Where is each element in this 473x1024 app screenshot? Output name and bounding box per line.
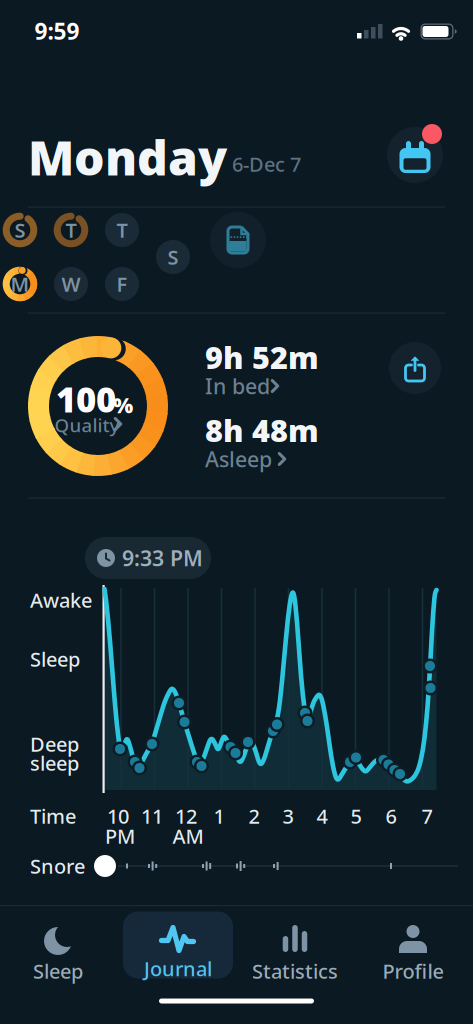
button[interactable]: Sleep notes xyxy=(210,212,266,268)
staticText: sleep xyxy=(30,750,79,776)
staticText: Statistics xyxy=(252,958,338,984)
button[interactable]: Sleep quality 100 percent xyxy=(26,334,170,478)
button[interactable]: Went to bed 9:33 PM xyxy=(85,537,211,579)
button[interactable]: W xyxy=(51,264,91,304)
button[interactable]: Play snore audio xyxy=(94,855,116,877)
staticText: 5 xyxy=(350,803,361,829)
staticText: PM xyxy=(105,823,135,849)
staticText: S xyxy=(167,244,178,270)
button[interactable]: Calendar xyxy=(383,121,447,189)
staticText: 9:59 xyxy=(34,16,79,46)
staticText: Profile xyxy=(382,958,443,984)
staticText: Monday xyxy=(28,125,227,189)
staticText: 1 xyxy=(213,803,224,829)
staticText: 12 xyxy=(175,803,197,829)
button[interactable]: F xyxy=(102,264,142,304)
staticText: Deep xyxy=(30,731,79,757)
button[interactable]: T xyxy=(102,210,142,250)
staticText: S xyxy=(14,217,25,243)
button[interactable]: Statistics xyxy=(240,911,350,981)
button[interactable]: Share xyxy=(389,342,441,394)
staticText: Sleep xyxy=(30,646,80,672)
button[interactable]: Profile xyxy=(358,911,468,981)
staticText: 9h 52m xyxy=(205,337,319,377)
button[interactable]: Sleep xyxy=(3,911,113,981)
staticText: Sleep xyxy=(33,958,83,984)
staticText: Asleep xyxy=(205,445,272,473)
staticText: 2 xyxy=(248,803,259,829)
button[interactable]: Journal xyxy=(123,911,233,978)
staticText: W xyxy=(61,271,80,297)
staticText: 10 xyxy=(107,803,129,829)
button[interactable]: Time asleep 8 hours 48 minutes xyxy=(205,416,365,474)
staticText: 100 xyxy=(56,376,116,422)
staticText: 4 xyxy=(316,803,327,829)
staticText: 8h 48m xyxy=(205,410,319,450)
staticText: In bed xyxy=(205,372,270,400)
staticText: 6-Dec 7 xyxy=(232,151,301,177)
staticText: Snore xyxy=(30,853,85,879)
button[interactable]: T xyxy=(51,210,91,250)
button[interactable]: S xyxy=(0,210,40,250)
staticText: F xyxy=(116,271,127,297)
staticText: 9:33 PM xyxy=(122,544,203,572)
staticText: Journal xyxy=(144,955,212,982)
button[interactable]: M xyxy=(0,264,40,304)
staticText: 11 xyxy=(141,803,163,829)
staticText: M xyxy=(10,271,29,297)
staticText: 6 xyxy=(385,803,396,829)
staticText: 3 xyxy=(282,803,293,829)
staticText: Quality xyxy=(54,413,119,437)
staticText: AM xyxy=(172,823,203,849)
button[interactable]: S xyxy=(153,237,193,277)
staticText: T xyxy=(116,217,127,243)
staticText: 7 xyxy=(421,803,432,829)
staticText: Awake xyxy=(30,587,92,613)
staticText: T xyxy=(65,217,76,243)
button[interactable]: Time in bed 9 hours 52 minutes xyxy=(205,343,365,401)
staticText: Time xyxy=(30,803,76,829)
staticText: % xyxy=(113,391,133,419)
